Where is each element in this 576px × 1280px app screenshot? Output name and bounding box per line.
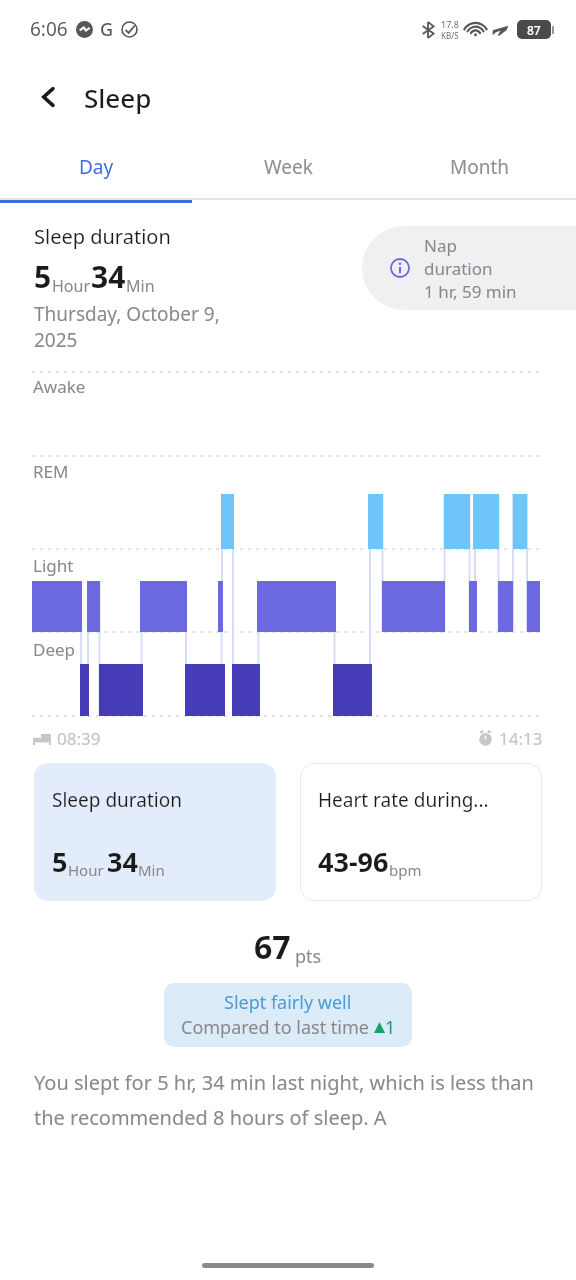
staticText: 1 hr, 59 min	[424, 280, 517, 303]
staticText: 6:06	[30, 16, 68, 42]
staticText: Min	[138, 860, 165, 880]
staticText: 1	[385, 1015, 396, 1040]
staticText: 87	[527, 22, 541, 38]
staticText: G	[100, 17, 114, 42]
button[interactable]: Back	[26, 74, 72, 120]
button[interactable]: Sleep duration	[34, 763, 276, 901]
staticText: Awake	[33, 375, 86, 398]
staticText: Month	[450, 154, 510, 180]
button[interactable]: Slept fairly well	[164, 983, 412, 1047]
staticText: You slept for 5 hr, 34 min last night, w…	[34, 1069, 542, 1131]
staticText: duration	[424, 257, 493, 280]
staticText: Thursday, October 9, 2025	[34, 301, 220, 353]
staticText: Heart rate during...	[318, 787, 489, 813]
staticText: Nap	[424, 234, 457, 257]
staticText: KB/S	[441, 30, 459, 41]
staticText: 5	[52, 843, 68, 880]
staticText: Min	[126, 275, 155, 297]
button[interactable]: Week	[192, 136, 384, 198]
staticText: Sleep	[84, 80, 152, 115]
staticText: 67	[254, 925, 291, 969]
staticText: Compared to last time	[181, 1015, 374, 1040]
staticText: 17.8	[441, 18, 459, 30]
staticText: 43-96	[318, 843, 389, 880]
staticText: 14:13	[499, 727, 543, 749]
staticText: Sleep duration	[52, 787, 182, 813]
staticText: Week	[264, 154, 313, 180]
button[interactable]: Day	[0, 136, 192, 198]
staticText: 34	[107, 843, 138, 880]
button[interactable]: Heart rate during...	[300, 763, 542, 901]
staticText: 34	[91, 256, 126, 297]
staticText: Deep	[33, 638, 76, 661]
button[interactable]: Month	[384, 136, 576, 198]
staticText: 08:39	[57, 727, 101, 749]
staticText: bpm	[389, 860, 422, 880]
staticText: Sleep duration	[34, 223, 171, 250]
staticText: REM	[33, 460, 69, 483]
staticText: Day	[79, 154, 114, 180]
staticText: Hour	[68, 860, 104, 880]
button[interactable]: Nap	[362, 226, 576, 310]
staticText: Hour	[52, 275, 91, 297]
staticText: Light	[33, 554, 74, 577]
staticText: pts	[295, 944, 322, 969]
staticText: Slept fairly well	[224, 990, 352, 1015]
staticText: 5	[34, 256, 52, 297]
